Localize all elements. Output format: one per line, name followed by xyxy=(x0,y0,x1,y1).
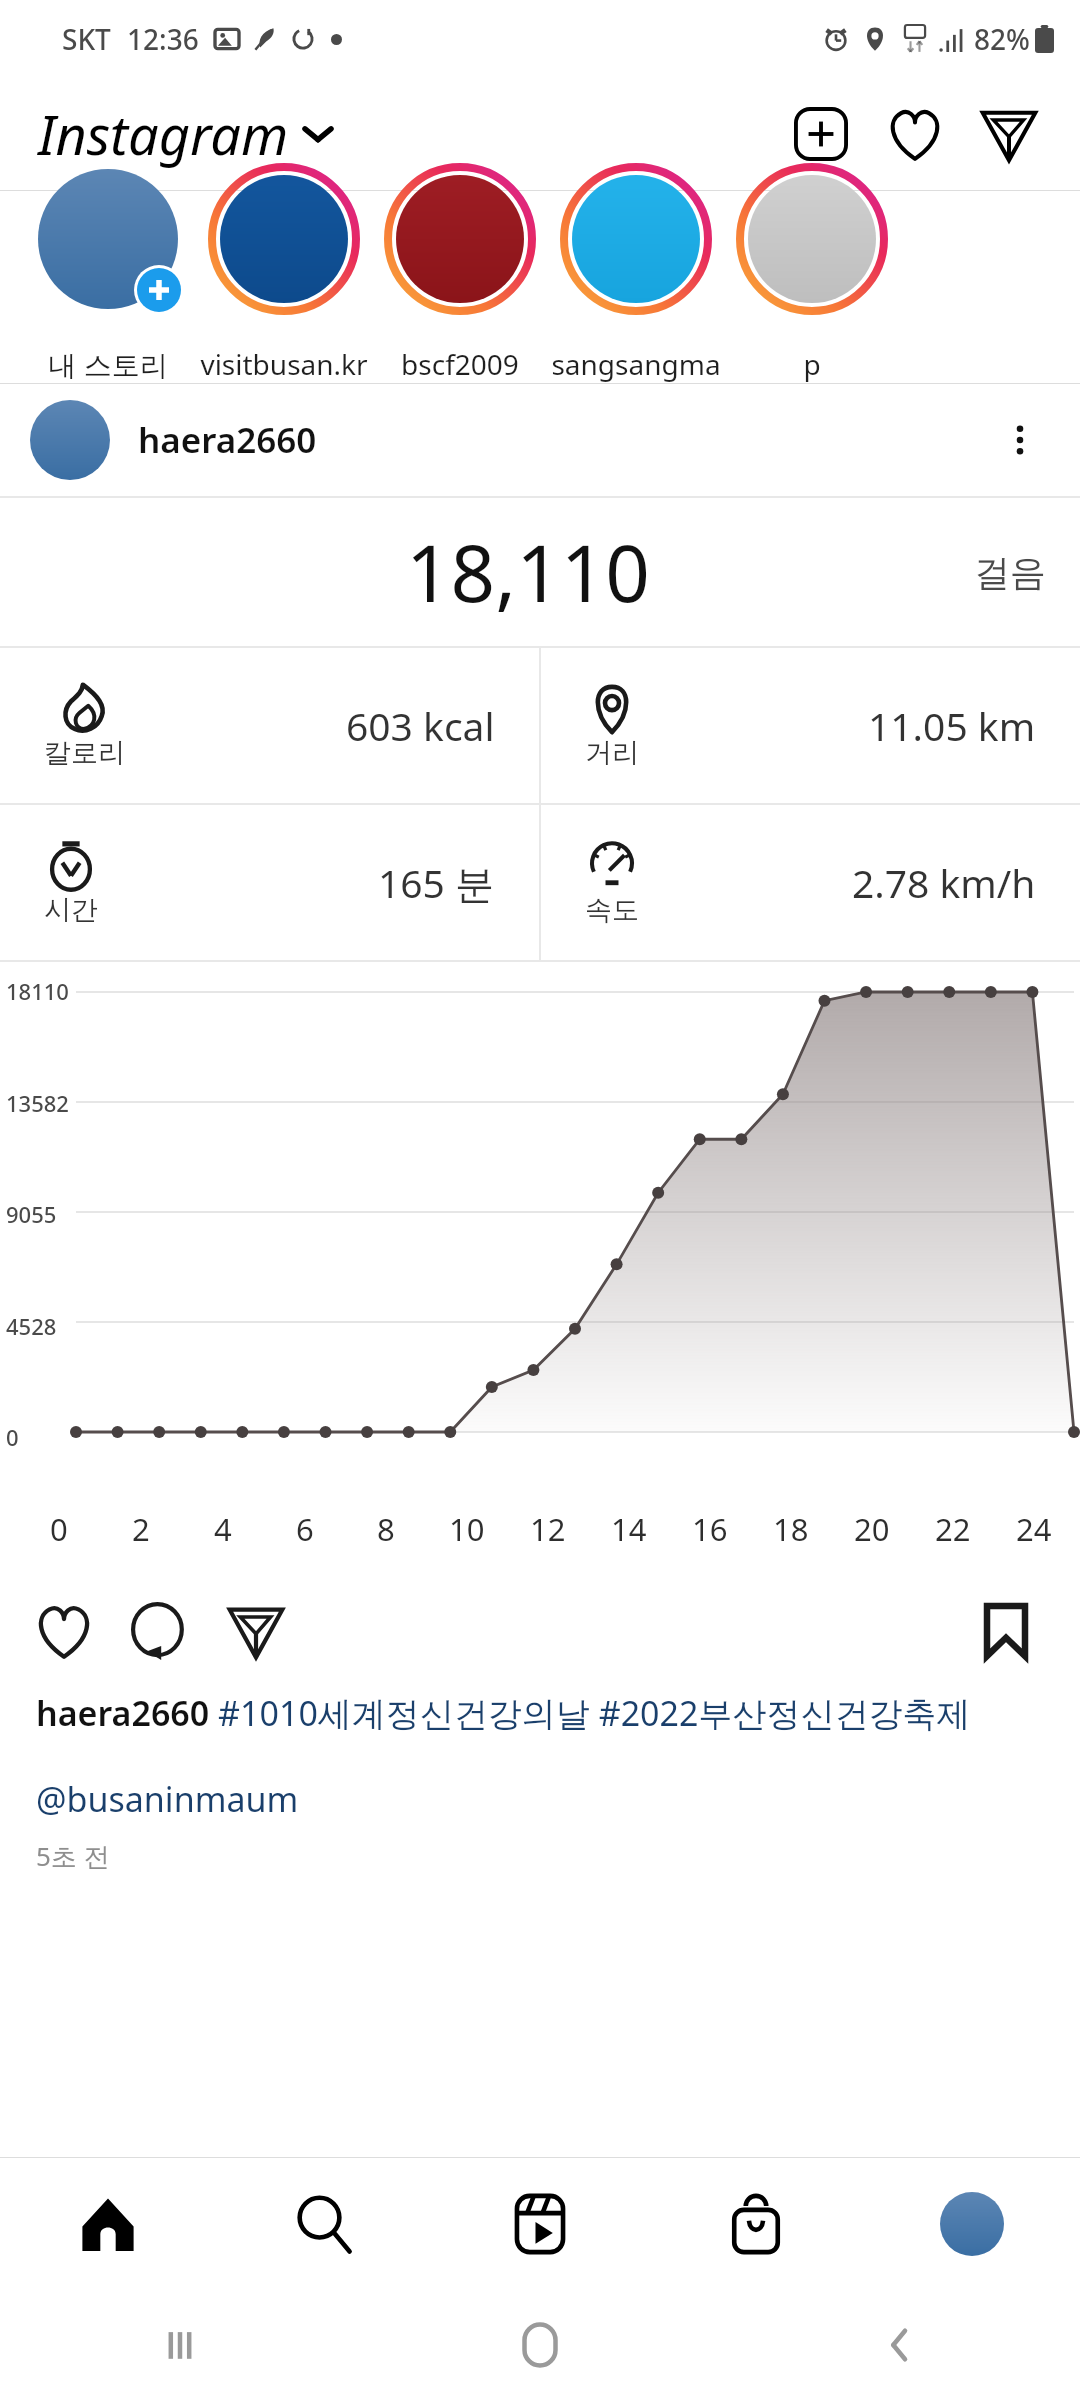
button[interactable]: bscf2009 xyxy=(372,191,548,383)
staticText: 14 xyxy=(611,1508,647,1550)
staticText: bscf2009 xyxy=(401,345,519,383)
staticText: sangsangmad... xyxy=(548,345,724,383)
staticText: haera2660 xyxy=(138,416,317,464)
button[interactable]: Shop xyxy=(648,2158,864,2290)
staticText: 0 xyxy=(6,1422,19,1452)
staticText: 12 xyxy=(530,1508,566,1550)
button[interactable]: 거리 xyxy=(541,648,1080,803)
staticText: haera2660 #1010세계정신건강의날 #2022부산정신건강축제 xyxy=(36,1690,971,1736)
staticText: 16 xyxy=(692,1508,728,1550)
staticText: 시간 xyxy=(44,893,98,927)
button[interactable]: New post xyxy=(784,97,858,171)
staticText: 18 xyxy=(773,1508,809,1550)
button[interactable]: p xyxy=(724,191,900,383)
button[interactable]: Messages xyxy=(972,97,1046,171)
staticText: 걸음 xyxy=(974,550,1046,595)
staticText: 22 xyxy=(935,1508,971,1550)
button[interactable]: Activity xyxy=(878,97,952,171)
staticText: visitbusan.kr xyxy=(200,345,368,383)
button[interactable]: Like xyxy=(20,1587,108,1675)
staticText: 칼로리 xyxy=(44,736,125,770)
button[interactable]: Reels xyxy=(432,2158,648,2290)
button[interactable]: sangsangmad... xyxy=(548,191,724,383)
button[interactable]: 내 스토리 xyxy=(20,191,196,383)
button[interactable]: Profile xyxy=(864,2158,1080,2290)
staticText: 2.78 km/h xyxy=(852,856,1036,909)
staticText: 5초 전 xyxy=(36,1838,110,1874)
button[interactable]: More options xyxy=(978,398,1062,482)
staticText: 12:36 xyxy=(127,20,199,58)
staticText: 거리 xyxy=(585,736,639,770)
staticText: 4528 xyxy=(6,1311,57,1341)
staticText: SKT xyxy=(62,20,111,58)
button[interactable]: visitbusan.kr xyxy=(196,191,372,383)
button[interactable]: 칼로리 xyxy=(0,648,539,803)
button[interactable]: @busaninmaum xyxy=(36,1776,299,1822)
staticText: 6 xyxy=(296,1508,314,1550)
staticText: 10 xyxy=(449,1508,485,1550)
button[interactable]: Home xyxy=(0,2158,216,2290)
button[interactable]: Recent apps xyxy=(0,2290,360,2400)
button[interactable]: Comment xyxy=(116,1587,204,1675)
button[interactable]: 시간 xyxy=(0,805,539,960)
button[interactable]: Share xyxy=(212,1587,300,1675)
staticText: 4 xyxy=(214,1508,232,1550)
staticText: 2 xyxy=(132,1508,150,1550)
button[interactable]: 속도 xyxy=(541,805,1080,960)
staticText: 11.05 km xyxy=(868,699,1036,752)
staticText: 13582 xyxy=(6,1088,69,1118)
staticText: p xyxy=(803,345,821,383)
staticText: 82% xyxy=(974,20,1030,58)
button[interactable]: Home xyxy=(360,2290,720,2400)
staticText: 20 xyxy=(854,1508,890,1550)
staticText: 8 xyxy=(377,1508,395,1550)
button[interactable]: Back xyxy=(720,2290,1080,2400)
staticText: 내 스토리 xyxy=(48,345,168,383)
button[interactable]: Search xyxy=(216,2158,432,2290)
staticText: 18,110 xyxy=(406,519,650,625)
button[interactable]: Save xyxy=(964,1589,1048,1673)
staticText: 603 kcal xyxy=(346,699,495,752)
staticText: 165 분 xyxy=(378,856,495,909)
button[interactable]: Instagram xyxy=(38,97,331,171)
staticText: 속도 xyxy=(585,893,639,927)
staticText: Instagram xyxy=(38,97,289,171)
staticText: 0 xyxy=(50,1508,68,1550)
staticText: 24 xyxy=(1016,1508,1052,1550)
staticText: 18110 xyxy=(6,976,69,1006)
button[interactable]: haera2660 xyxy=(0,384,1080,496)
staticText: 9055 xyxy=(6,1199,57,1229)
